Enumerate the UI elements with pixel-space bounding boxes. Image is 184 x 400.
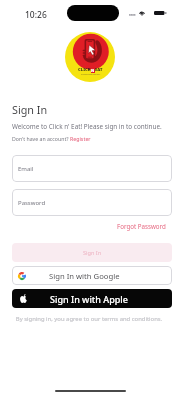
staticText: 10:26 [25, 9, 47, 21]
staticText: CLICK [78, 67, 91, 73]
staticText: Sign In [83, 249, 102, 257]
button[interactable]: Forgot Password [117, 222, 166, 230]
other: Sign in with Apple [20, 294, 27, 303]
other: Sign in with Google [18, 272, 26, 280]
staticText: Sign In with Google [49, 271, 120, 281]
staticText: Welcome to Click n' Eat! Please sign in … [12, 122, 162, 131]
staticText: Don't have an account? [12, 135, 70, 142]
staticText: By signing in, you agree to our terms an… [12, 315, 166, 323]
button[interactable]: Sign in with Apple [12, 289, 172, 308]
staticText: N [91, 68, 95, 73]
button[interactable]: Sign in with Google [12, 266, 172, 285]
staticText: Sign In [12, 102, 48, 117]
button[interactable]: Email [12, 155, 172, 182]
staticText: Sign In with Apple [50, 293, 128, 305]
button[interactable]: Register [70, 135, 91, 142]
button[interactable]: Password [12, 189, 172, 216]
staticText: Email [18, 165, 34, 173]
staticText: FASTER FOOD DELIVERY [81, 73, 101, 75]
staticText: Password [18, 199, 46, 207]
staticText: EAT [95, 67, 103, 73]
button[interactable]: Sign In [12, 243, 172, 262]
